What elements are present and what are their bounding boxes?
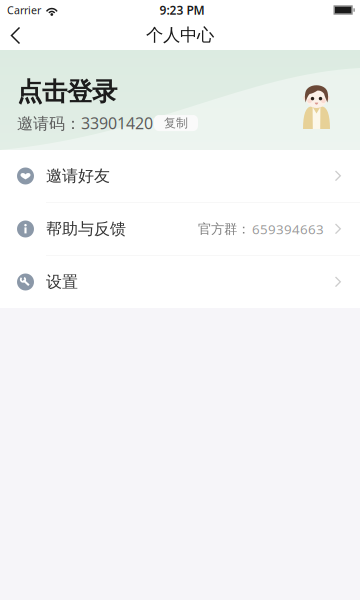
- staticText: Carrier: [7, 3, 41, 17]
- button[interactable]: 返回: [0, 20, 32, 50]
- button[interactable]: 邀请好友: [0, 150, 360, 202]
- button[interactable]: 帮助与反馈: [0, 203, 360, 255]
- staticText: 邀请好友: [46, 166, 110, 186]
- staticText: 9:23 PM: [159, 2, 204, 18]
- staticText: 帮助与反馈: [46, 219, 126, 239]
- staticText: 个人中心: [146, 24, 214, 46]
- staticText: 点击登录: [17, 76, 117, 107]
- button[interactable]: 点击登录: [17, 76, 117, 107]
- button[interactable]: 复制: [154, 115, 198, 131]
- staticText: 复制: [164, 116, 188, 130]
- staticText: 邀请码：33901420: [17, 112, 153, 134]
- button[interactable]: 设置: [0, 256, 360, 308]
- staticText: 659394663: [252, 220, 324, 238]
- staticText: 设置: [46, 272, 78, 292]
- staticText: 官方群：: [198, 221, 250, 237]
